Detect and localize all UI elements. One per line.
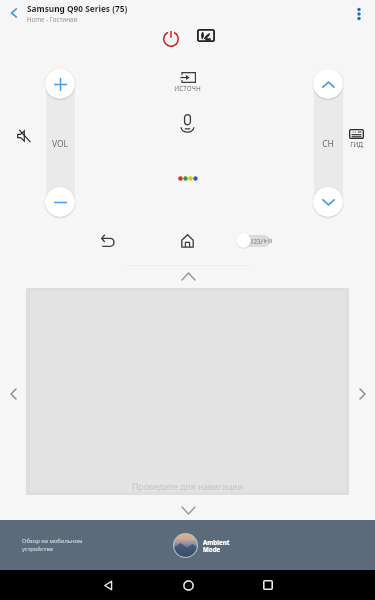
button[interactable]: More options: [347, 2, 371, 26]
button[interactable]: Обзор на мобильном устройстве: [22, 537, 83, 552]
button[interactable]: Numeric keypad toggle: [236, 232, 271, 249]
button[interactable]: Home: [174, 571, 202, 599]
staticText: Проведите для навигации: [132, 481, 244, 493]
button[interactable]: [178, 176, 198, 181]
button[interactable]: Home: [173, 227, 201, 255]
button[interactable]: Channel up: [313, 69, 343, 99]
button[interactable]: Channel down: [313, 187, 343, 217]
button[interactable]: Ambient Mode: [173, 533, 230, 558]
button[interactable]: Back: [94, 571, 122, 599]
button[interactable]: Mute: [11, 123, 37, 149]
button[interactable]: Back: [2, 1, 26, 25]
staticText: CH: [313, 138, 343, 150]
button[interactable]: Power: [157, 25, 185, 53]
button[interactable]: Left: [1, 378, 25, 410]
button[interactable]: ИСТОЧН: [167, 68, 208, 93]
staticText: ИСТОЧН: [174, 84, 201, 93]
button[interactable]: Expand up: [172, 268, 204, 284]
button[interactable]: Picture mode: [192, 22, 220, 50]
button[interactable]: Volume down: [45, 187, 75, 217]
staticText: ГИД: [350, 140, 363, 149]
button[interactable]: Recents: [254, 571, 282, 599]
staticText: Samsung Q90 Series (75): [27, 3, 128, 14]
staticText: VOL: [45, 138, 75, 150]
staticText: Ambient Mode: [203, 538, 230, 554]
button[interactable]: Return: [94, 226, 122, 254]
button[interactable]: Volume up: [45, 69, 75, 99]
button[interactable]: Voice: [174, 107, 201, 134]
button[interactable]: ГИД: [338, 124, 374, 149]
staticText: Home - Гостиная: [27, 15, 77, 23]
button[interactable]: Collapse down: [172, 502, 204, 518]
staticText: 123/: [250, 237, 264, 245]
button[interactable]: Right: [350, 378, 374, 410]
